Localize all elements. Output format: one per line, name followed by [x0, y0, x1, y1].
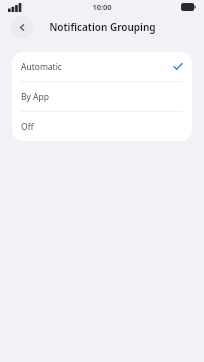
button[interactable]: By App	[12, 82, 192, 111]
staticText: Automatic	[21, 61, 62, 73]
button[interactable]: Off	[12, 112, 192, 141]
button[interactable]: Automatic	[12, 52, 192, 81]
staticText: Off	[21, 121, 34, 133]
staticText: By App	[21, 91, 49, 103]
staticText: Notification Grouping	[49, 20, 156, 34]
staticText: 10:00	[92, 2, 112, 12]
button[interactable]: Back	[11, 16, 33, 38]
